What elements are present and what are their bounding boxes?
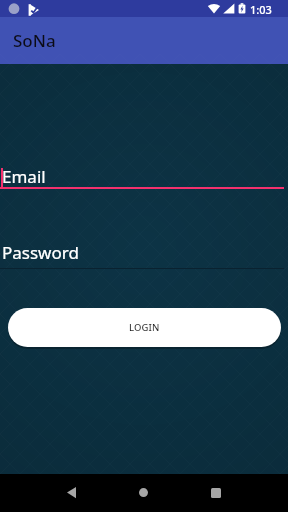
button[interactable]: [0, 158, 284, 189]
button[interactable]: [56, 482, 86, 504]
staticText: 1:03: [250, 2, 272, 17]
staticText: SoNa: [13, 29, 56, 52]
button[interactable]: [129, 482, 159, 504]
staticText: Password: [2, 241, 79, 264]
staticText: Email: [2, 165, 46, 188]
button[interactable]: [0, 236, 284, 269]
staticText: LOGIN: [129, 321, 160, 334]
button[interactable]: LOGIN: [8, 308, 281, 347]
button[interactable]: [201, 482, 231, 504]
